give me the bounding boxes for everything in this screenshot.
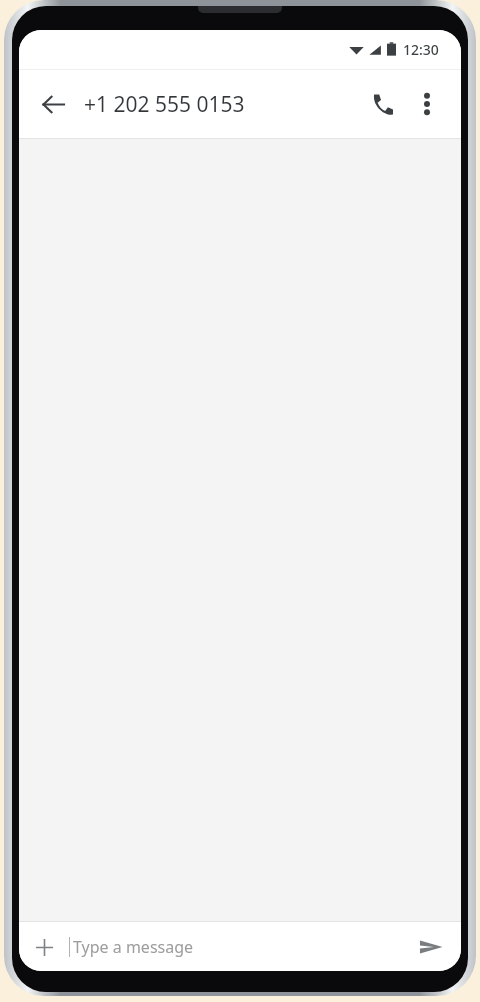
button[interactable]: Send [409,925,453,969]
button[interactable]: Call [357,80,405,128]
button[interactable]: More options [405,82,449,126]
staticText: Type a message [73,936,194,958]
button[interactable]: Back [29,80,77,128]
button[interactable]: Add attachment [24,927,64,967]
staticText: +1 202 555 0153 [84,90,357,119]
button[interactable]: Type a message [69,922,409,971]
staticText: 12:30 [403,40,439,59]
